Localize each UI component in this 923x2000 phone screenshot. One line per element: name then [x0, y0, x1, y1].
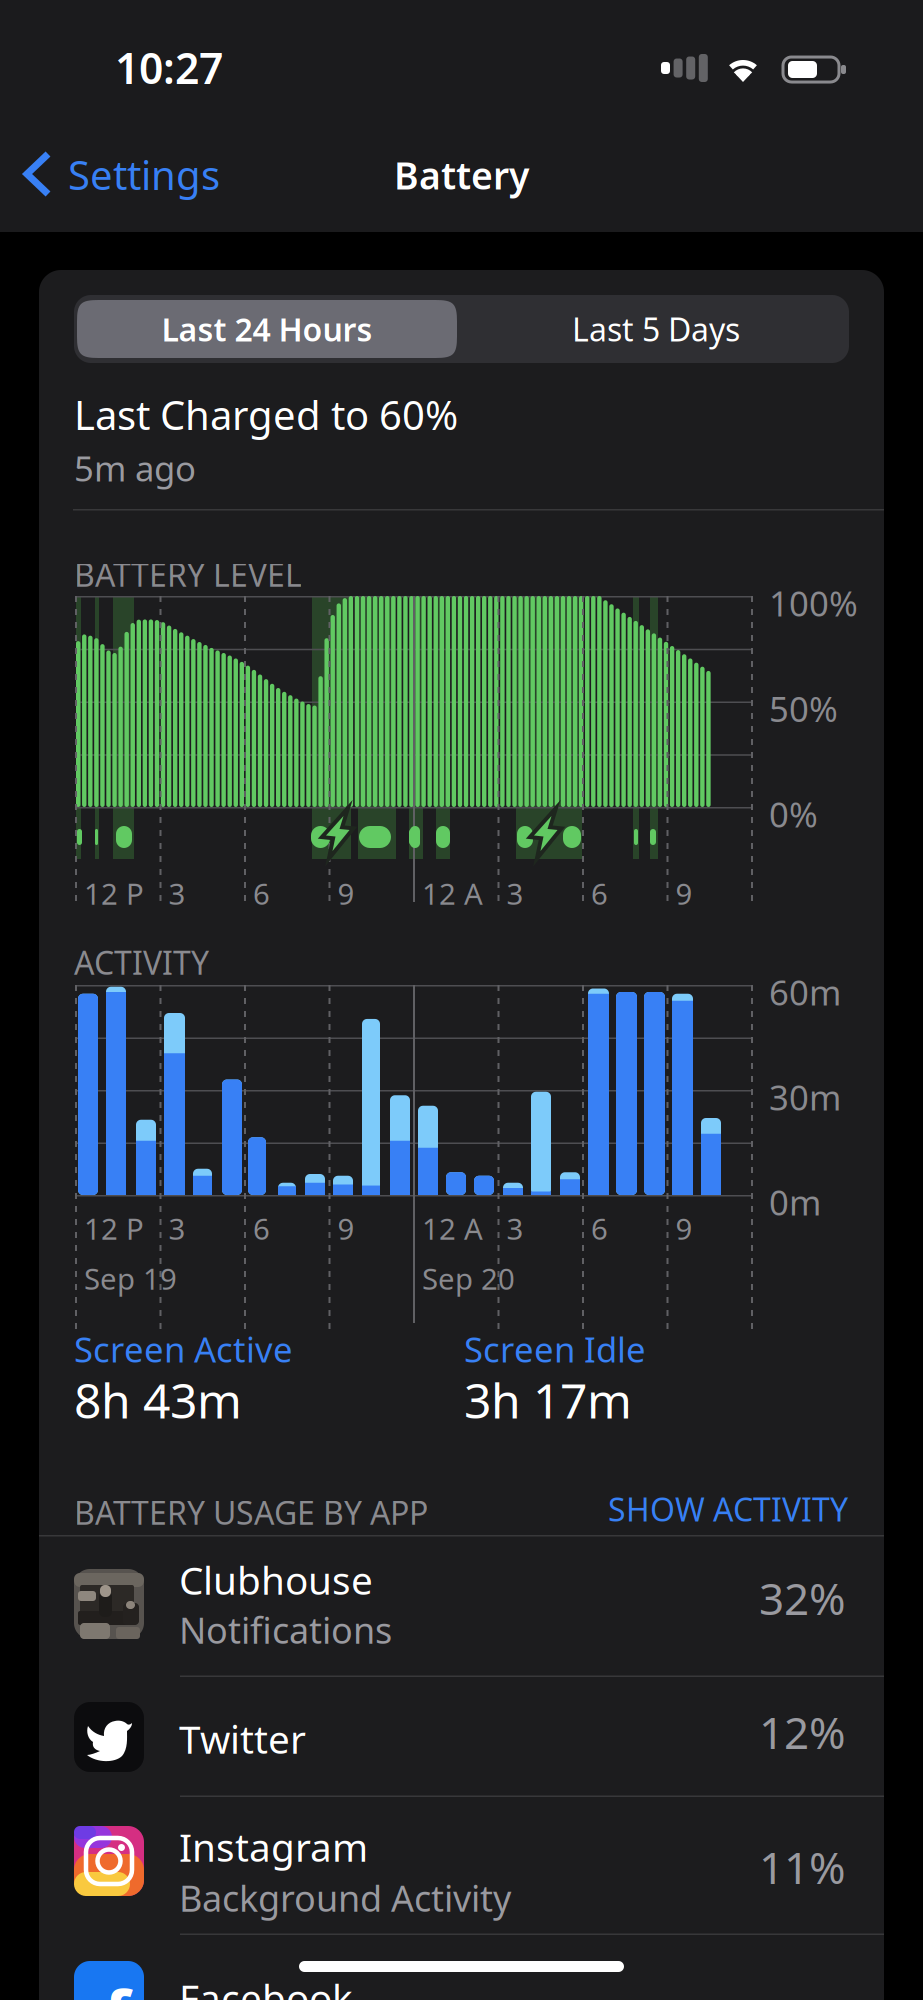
- staticText: 10:27: [115, 39, 223, 96]
- staticText: Notifications: [179, 1606, 392, 1654]
- staticText: 12 A: [422, 874, 483, 913]
- button[interactable]: Twitter: [39, 1677, 884, 1797]
- staticText: 11%: [759, 1838, 846, 1896]
- staticText: Background Activity: [179, 1874, 511, 1922]
- button[interactable]: Instagram: [39, 1797, 884, 1935]
- staticText: 30m: [769, 1074, 841, 1120]
- staticText: Last Charged to 60%: [74, 388, 458, 441]
- staticText: SHOW ACTIVITY: [608, 1488, 848, 1530]
- staticText: Screen Idle: [464, 1326, 646, 1372]
- button[interactable]: Last 24 Hours: [77, 300, 457, 358]
- staticText: 60m: [769, 969, 841, 1015]
- button[interactable]: SHOW ACTIVITY: [548, 1491, 848, 1527]
- staticText: 12 A: [422, 1209, 483, 1248]
- staticText: 9: [675, 874, 692, 913]
- staticText: 6: [591, 1209, 608, 1248]
- staticText: ACTIVITY: [74, 941, 209, 983]
- button[interactable]: f: [39, 1935, 884, 2000]
- staticText: 12%: [759, 1703, 846, 1761]
- staticText: 3: [168, 1209, 185, 1248]
- staticText: Settings: [68, 148, 220, 201]
- staticText: 8h 43m: [74, 1368, 242, 1432]
- staticText: Sep 19: [84, 1259, 177, 1298]
- staticText: 9: [337, 874, 354, 913]
- staticText: 32%: [759, 1569, 846, 1627]
- staticText: 3: [506, 874, 523, 913]
- staticText: Clubhouse: [179, 1554, 373, 1605]
- staticText: 3: [168, 874, 185, 913]
- staticText: Last 24 Hours: [161, 308, 372, 350]
- staticText: Instagram: [179, 1821, 368, 1872]
- button[interactable]: Last 5 Days: [466, 300, 846, 358]
- staticText: 12 P: [84, 1209, 144, 1248]
- staticText: Battery: [394, 150, 529, 200]
- staticText: 9: [337, 1209, 354, 1248]
- staticText: 100%: [769, 580, 858, 626]
- staticText: Last 5 Days: [572, 308, 740, 350]
- staticText: 6: [591, 874, 608, 913]
- staticText: 50%: [769, 685, 838, 731]
- button[interactable]: Clubhouse: [39, 1536, 884, 1677]
- staticText: Facebook: [179, 1972, 353, 2000]
- staticText: Twitter: [179, 1713, 306, 1764]
- staticText: BATTERY USAGE BY APP: [74, 1491, 428, 1533]
- staticText: BATTERY LEVEL: [74, 553, 302, 595]
- button[interactable]: Settings: [0, 134, 240, 212]
- button[interactable]: Screen Idle: [464, 1330, 724, 1368]
- staticText: Sep 20: [422, 1259, 515, 1298]
- button[interactable]: Screen Active: [74, 1330, 334, 1368]
- staticText: f: [104, 1969, 130, 2000]
- staticText: 6: [253, 874, 270, 913]
- staticText: 9: [675, 1209, 692, 1248]
- staticText: 0m: [769, 1179, 821, 1225]
- staticText: 3h 17m: [464, 1368, 632, 1432]
- staticText: 12 P: [84, 874, 144, 913]
- staticText: Screen Active: [74, 1326, 293, 1372]
- staticText: 6: [253, 1209, 270, 1248]
- staticText: 3: [506, 1209, 523, 1248]
- staticText: 0%: [769, 791, 818, 837]
- staticText: 5m ago: [74, 445, 196, 491]
